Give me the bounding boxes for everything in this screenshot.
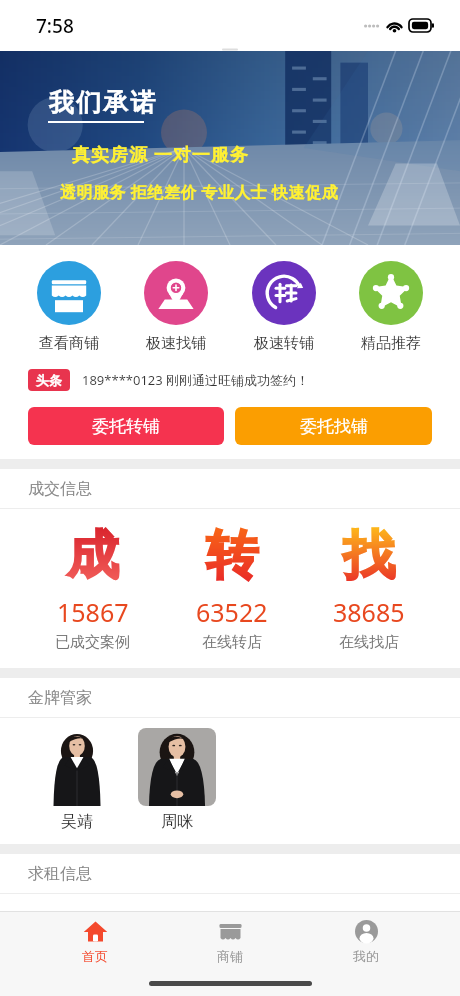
button[interactable]: 成 <box>45 523 140 652</box>
staticText: 转 <box>206 523 258 589</box>
button[interactable]: 找 <box>323 523 415 652</box>
staticText: 我们承诺 <box>48 87 156 118</box>
staticText: 求租信息 <box>28 864 92 884</box>
staticText: 38685 <box>333 595 405 629</box>
button[interactable]: 首页 <box>54 915 136 968</box>
staticText: 头条 <box>36 372 62 388</box>
staticText: 7:58 <box>36 13 74 39</box>
staticText: 已成交案例 <box>55 633 130 652</box>
staticText: 查看商铺 <box>39 334 99 353</box>
staticText: 找 <box>343 523 395 589</box>
staticText: 189****0123 刚刚通过旺铺成功签约！ <box>82 371 310 389</box>
button[interactable]: 头条 <box>28 369 440 391</box>
staticText: 在线转店 <box>202 633 262 652</box>
staticText: 商铺 <box>217 948 243 964</box>
staticText: 金牌管家 <box>28 688 92 708</box>
staticText: 吴靖 <box>61 812 93 832</box>
button[interactable]: 极速转铺 <box>246 259 322 355</box>
button[interactable]: 我的 <box>325 915 407 968</box>
staticText: 极速转铺 <box>254 334 314 353</box>
staticText: 在线找店 <box>339 633 399 652</box>
staticText: 我的 <box>353 948 379 964</box>
staticText: 成 <box>67 523 119 589</box>
staticText: 15867 <box>57 595 129 629</box>
staticText: 委托找铺 <box>300 416 368 437</box>
staticText: 首页 <box>82 948 108 964</box>
button[interactable]: 极速找铺 <box>138 259 214 355</box>
button[interactable]: 精品推荐 <box>353 259 429 355</box>
button[interactable]: 转 <box>186 523 278 652</box>
staticText: 精品推荐 <box>361 334 421 353</box>
staticText: 真实房源 一对一服务 <box>72 142 249 167</box>
staticText: 周咪 <box>161 812 193 832</box>
button[interactable]: 委托找铺 <box>235 407 432 445</box>
staticText: 极速找铺 <box>146 334 206 353</box>
button[interactable]: 查看商铺 <box>31 259 107 355</box>
staticText: 成交信息 <box>28 479 92 499</box>
button[interactable]: 吴靖 <box>38 728 116 832</box>
button[interactable]: 周咪 <box>138 728 216 832</box>
button[interactable]: 委托转铺 <box>28 407 224 445</box>
staticText: 委托转铺 <box>92 416 160 437</box>
staticText: 透明服务 拒绝差价 专业人士 快速促成 <box>60 181 338 203</box>
staticText: 63522 <box>196 595 268 629</box>
button[interactable]: 商铺 <box>189 915 271 968</box>
